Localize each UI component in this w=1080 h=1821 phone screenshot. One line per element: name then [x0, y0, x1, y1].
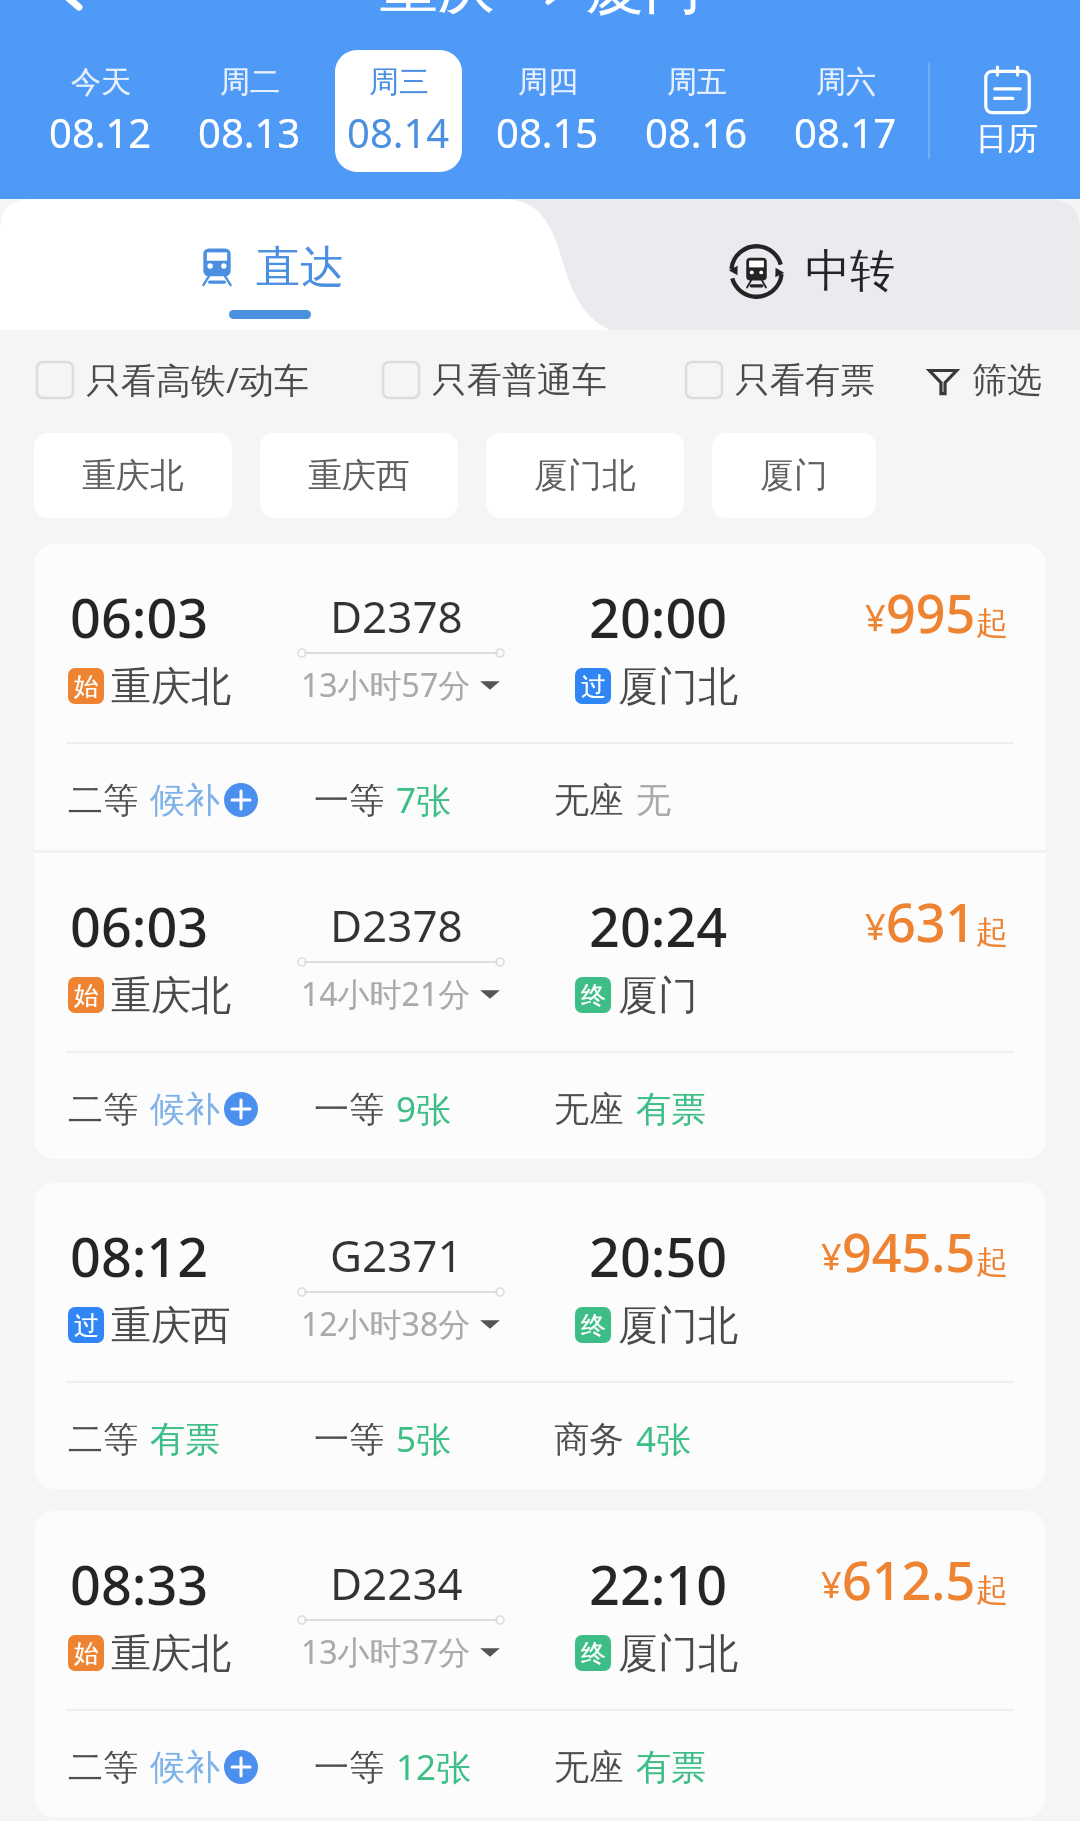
staticText: 重庆西 [308, 454, 410, 497]
button[interactable]: 周五 [633, 50, 760, 172]
staticText: 起 [976, 603, 1008, 643]
button[interactable]: 08:33 [34, 1511, 1046, 1817]
button[interactable]: 06:03 [34, 853, 1046, 1159]
staticText: 重庆北 [111, 970, 231, 1020]
staticText: 重庆 [380, 0, 496, 16]
staticText: 5张 [396, 1415, 452, 1463]
staticText: 612.5 [842, 1544, 976, 1615]
staticText: 起 [976, 1242, 1008, 1282]
staticText: 有票 [150, 1417, 220, 1461]
staticText: 筛选 [972, 358, 1042, 402]
button[interactable]: 厦门北 [486, 433, 684, 518]
staticText: 周三 [369, 63, 429, 101]
staticText: ¥ [865, 593, 886, 642]
staticText: 始 [74, 980, 99, 1011]
staticText: D2378 [330, 586, 463, 646]
staticText: 候补 [150, 778, 220, 822]
staticText: 20:00 [589, 580, 728, 654]
button[interactable]: 06:03 [34, 544, 1046, 850]
button[interactable]: 重庆北 [34, 433, 232, 518]
staticText: 二等 [68, 1745, 138, 1789]
staticText: 无 [636, 778, 671, 822]
staticText: 起 [976, 912, 1008, 952]
staticText: 二等 [68, 1417, 138, 1461]
staticText: 一等 [314, 1417, 384, 1461]
staticText: 08.13 [198, 105, 301, 159]
staticText: 终 [581, 1310, 606, 1341]
staticText: 7张 [396, 776, 452, 824]
staticText: 周二 [220, 63, 280, 101]
staticText: 有票 [636, 1087, 706, 1131]
staticText: 厦门北 [618, 1300, 738, 1350]
staticText: 一等 [314, 1087, 384, 1131]
staticText: 22:10 [589, 1547, 728, 1621]
staticText: 06:03 [70, 889, 209, 963]
staticText: 995 [886, 577, 976, 648]
staticText: 有票 [636, 1745, 706, 1789]
button[interactable]: 周六 [782, 50, 909, 172]
button[interactable]: 日历 [942, 43, 1072, 179]
button[interactable]: Back [38, 0, 100, 16]
staticText: 始 [74, 1638, 99, 1669]
button[interactable]: 周四 [484, 50, 611, 172]
button[interactable]: 今天 [37, 50, 164, 172]
staticText: 候补 [150, 1087, 220, 1131]
button[interactable]: 周二 [186, 50, 313, 172]
button[interactable]: 08:12 [34, 1183, 1046, 1489]
staticText: 厦门北 [618, 661, 738, 711]
staticText: 重庆西 [111, 1300, 231, 1350]
staticText: 日历 [976, 119, 1038, 158]
staticText: 08:12 [70, 1219, 209, 1293]
staticText: 今天 [71, 63, 131, 101]
button[interactable]: 筛选 [926, 358, 1042, 402]
staticText: 08.14 [347, 105, 450, 159]
staticText: 重庆北 [82, 454, 184, 497]
staticText: 08.16 [645, 105, 748, 159]
button[interactable]: 厦门 [712, 433, 876, 518]
button[interactable]: 重庆西 [260, 433, 458, 518]
staticText: 周四 [518, 63, 578, 101]
button[interactable] [700, 209, 960, 329]
button[interactable]: 只看高铁/动车 [36, 356, 310, 404]
button[interactable]: 周三 [335, 50, 462, 172]
staticText: 终 [581, 1638, 606, 1669]
staticText: 只看高铁/动车 [86, 356, 310, 404]
staticText: D2378 [330, 895, 463, 955]
button[interactable]: 只看普通车 [382, 358, 607, 402]
staticText: 13小时57分 [301, 663, 471, 707]
staticText: 一等 [314, 778, 384, 822]
staticText: 商务 [554, 1417, 624, 1461]
staticText: 厦门北 [534, 454, 636, 497]
button[interactable]: 只看有票 [685, 358, 875, 402]
staticText: 候补 [150, 1745, 220, 1789]
staticText: ¥ [821, 1560, 842, 1609]
staticText: 12小时38分 [301, 1302, 471, 1346]
staticText: 631 [886, 886, 976, 957]
staticText: 只看有票 [735, 358, 875, 402]
staticText: 二等 [68, 1087, 138, 1131]
staticText: 无座 [554, 778, 624, 822]
staticText: 只看普通车 [432, 358, 607, 402]
staticText: 始 [74, 671, 99, 702]
staticText: 厦门 [618, 970, 698, 1020]
staticText: 08.12 [49, 105, 152, 159]
staticText: 08:33 [70, 1547, 209, 1621]
button[interactable] [150, 209, 400, 329]
staticText: 二等 [68, 778, 138, 822]
staticText: 14小时21分 [301, 972, 471, 1016]
staticText: 4张 [636, 1415, 692, 1463]
staticText: 中转 [805, 243, 895, 300]
staticText: 20:24 [589, 889, 728, 963]
staticText: 起 [976, 1570, 1008, 1610]
staticText: ¥ [821, 1232, 842, 1281]
staticText: 重庆北 [111, 661, 231, 711]
staticText: 9张 [396, 1085, 452, 1133]
staticText: 厦门北 [618, 1628, 738, 1678]
staticText: 过 [74, 1310, 99, 1341]
staticText: 945.5 [842, 1216, 976, 1287]
staticText: G2371 [330, 1225, 463, 1285]
staticText: 06:03 [70, 580, 209, 654]
staticText: 终 [581, 980, 606, 1011]
staticText: 12张 [396, 1743, 472, 1791]
staticText: 周五 [667, 63, 727, 101]
